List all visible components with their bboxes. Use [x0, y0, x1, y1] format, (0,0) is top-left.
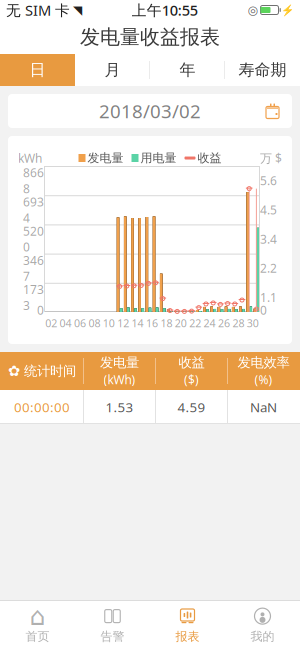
staticText: 年 — [179, 60, 195, 80]
staticText: NaN — [250, 398, 277, 416]
staticText: 4.5 — [260, 202, 277, 218]
staticText: ◎ — [247, 3, 257, 17]
staticText: 5200 — [23, 223, 44, 255]
staticText: 14 — [132, 316, 144, 330]
staticText: kWh — [18, 150, 42, 166]
button[interactable]: 我的 — [225, 601, 300, 649]
staticText: 8668 — [23, 165, 44, 197]
staticText: (kWh) — [103, 372, 135, 388]
staticText: 统计时间 — [24, 363, 76, 379]
staticText: ($) — [184, 372, 199, 388]
staticText: 1733 — [23, 281, 44, 313]
staticText: 0 — [260, 302, 267, 318]
staticText: 日 — [29, 60, 45, 80]
staticText: 月 — [104, 60, 120, 80]
button[interactable]: 年 — [150, 54, 225, 86]
staticText: 08 — [88, 316, 100, 330]
button[interactable]: 报表 — [150, 601, 225, 649]
staticText: 1.1 — [260, 289, 277, 305]
staticText: 18 — [160, 316, 172, 330]
staticText: ⚡ — [281, 4, 294, 16]
staticText: 22 — [189, 316, 201, 330]
staticText: 00:00:00 — [14, 398, 70, 416]
staticText: 30 — [247, 316, 259, 330]
staticText: 报表 — [175, 629, 199, 644]
staticText: 发电量 — [87, 151, 123, 165]
staticText: ✿ — [8, 363, 20, 379]
staticText: 发电量 — [100, 354, 139, 371]
staticText: 上午10:55 — [132, 0, 198, 20]
staticText: ⌂ — [29, 602, 45, 631]
staticText: (%) — [254, 372, 272, 388]
staticText: 26 — [218, 316, 230, 330]
staticText: 告警 — [100, 629, 124, 644]
staticText: 02 — [45, 316, 57, 330]
staticText: 6934 — [23, 194, 44, 226]
staticText: 28 — [232, 316, 244, 330]
staticText: 3.4 — [260, 231, 277, 247]
button[interactable]: 告警 — [75, 601, 150, 649]
staticText: 收益 — [197, 151, 221, 165]
staticText: 用电量 — [140, 151, 176, 165]
staticText: 2.2 — [260, 260, 277, 276]
staticText: 12 — [117, 316, 129, 330]
staticText: 10 — [103, 316, 115, 330]
staticText: 发电效率 — [237, 354, 289, 371]
button[interactable]: ⌂ — [0, 601, 75, 649]
staticText: 20 — [175, 316, 187, 330]
staticText: 万 $ — [260, 150, 282, 166]
staticText: 1.53 — [105, 398, 133, 416]
staticText: 寿命期 — [238, 60, 286, 80]
button[interactable]: 寿命期 — [225, 54, 300, 86]
button[interactable]: 月 — [75, 54, 150, 86]
staticText: 16 — [146, 316, 158, 330]
staticText: 发电量收益报表 — [80, 25, 220, 49]
staticText: 0 — [37, 302, 44, 318]
staticText: 我的 — [250, 629, 274, 644]
staticText: 06 — [74, 316, 86, 330]
staticText: 04 — [60, 316, 72, 330]
staticText: 4.59 — [177, 398, 205, 416]
button[interactable]: 日 — [0, 54, 75, 86]
button[interactable]: 2018/03/02 — [8, 94, 292, 128]
staticText: 首页 — [25, 629, 49, 644]
staticText: 3467 — [23, 252, 44, 284]
staticText: 5.6 — [260, 173, 277, 188]
staticText: ◥ — [73, 3, 82, 17]
staticText: 无 SIM 卡 — [6, 0, 70, 20]
staticText: 2018/03/02 — [99, 99, 201, 123]
staticText: 24 — [204, 316, 216, 330]
staticText: 收益 — [178, 354, 204, 371]
